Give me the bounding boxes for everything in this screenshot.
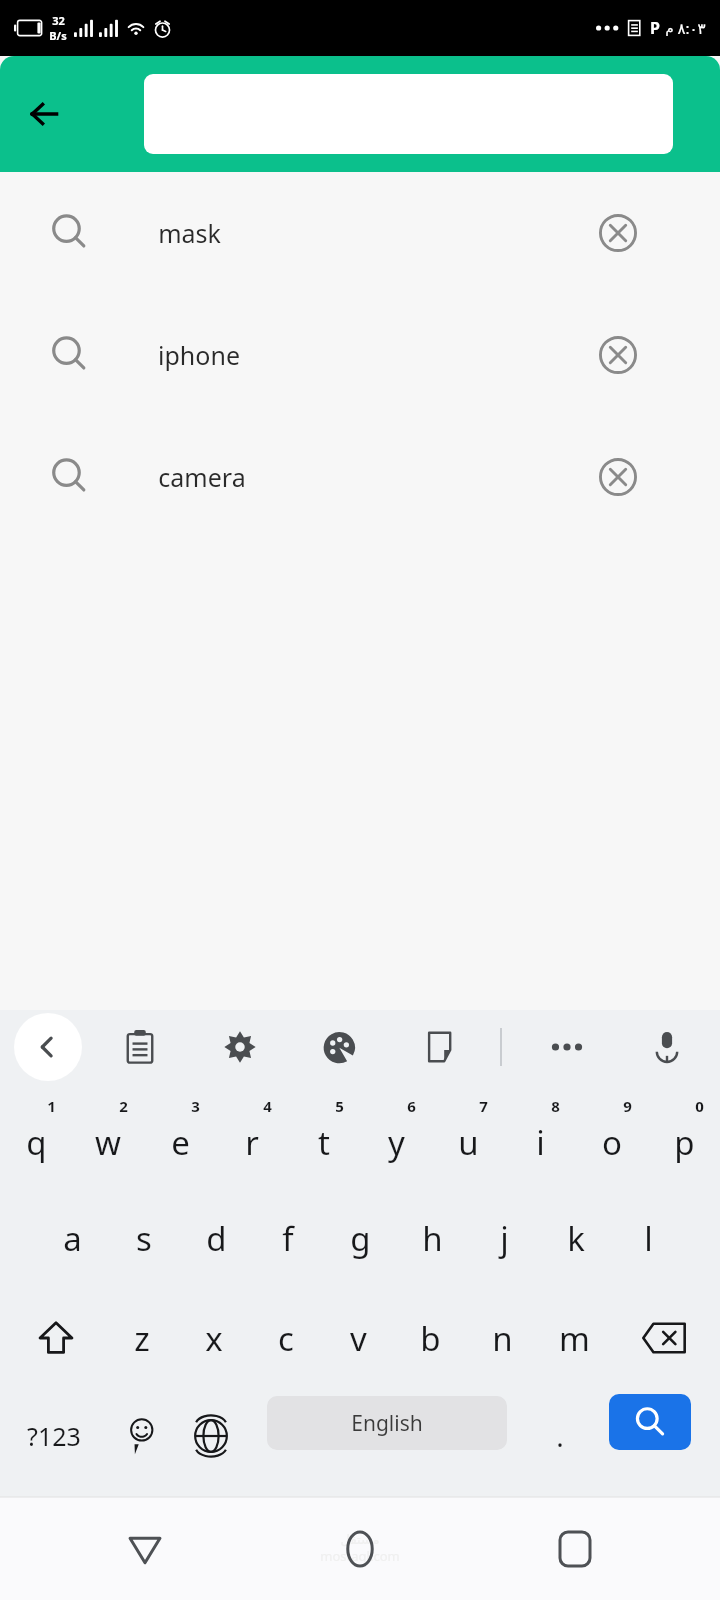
staticText: n (492, 1316, 513, 1361)
staticText: k (567, 1216, 585, 1261)
button[interactable]: z (106, 1288, 178, 1388)
button[interactable]: Stickers (406, 1013, 474, 1081)
staticText: u (458, 1120, 479, 1165)
button[interactable]: c (250, 1288, 322, 1388)
staticText: م (665, 21, 674, 36)
staticText: t (318, 1120, 330, 1165)
button[interactable]: Remove mask (596, 211, 640, 255)
button[interactable]: o (576, 1084, 648, 1188)
button[interactable]: camera (0, 416, 720, 538)
staticText: 4 (263, 1096, 272, 1116)
staticText: p (674, 1120, 695, 1165)
button[interactable]: Recent apps (540, 1514, 610, 1584)
button[interactable]: More options (533, 1013, 601, 1081)
staticText: P (650, 17, 660, 39)
button[interactable]: Remove iphone (596, 333, 640, 377)
button[interactable]: b (394, 1288, 466, 1388)
button[interactable]: m (538, 1288, 610, 1388)
button[interactable]: r (216, 1084, 288, 1188)
staticText: English (351, 1409, 423, 1438)
button[interactable]: w (72, 1084, 144, 1188)
staticText: 0 (695, 1096, 704, 1116)
button[interactable]: Search field (144, 74, 673, 154)
staticText: 2 (119, 1096, 128, 1116)
button[interactable]: Back (110, 1514, 180, 1584)
button[interactable]: Backspace (624, 1288, 704, 1388)
staticText: i (536, 1120, 545, 1165)
staticText: b (420, 1316, 441, 1361)
staticText: e (171, 1120, 190, 1165)
staticText: z (134, 1316, 150, 1361)
staticText: B/s (49, 28, 67, 43)
staticText: 8 (551, 1096, 560, 1116)
staticText: x (205, 1316, 223, 1361)
staticText: s (136, 1216, 152, 1261)
staticText: camera (158, 460, 246, 494)
staticText: 32 (52, 13, 65, 28)
button[interactable]: u (432, 1084, 504, 1188)
button[interactable]: h (396, 1188, 468, 1288)
staticText: . (556, 1417, 564, 1455)
button[interactable]: x (178, 1288, 250, 1388)
button[interactable]: y (360, 1084, 432, 1188)
button[interactable]: Home (325, 1514, 395, 1584)
button[interactable]: Themes (306, 1013, 374, 1081)
button[interactable]: j (468, 1188, 540, 1288)
button[interactable]: Voice input (633, 1013, 701, 1081)
button[interactable]: f (252, 1188, 324, 1288)
button[interactable]: ?123 (8, 1388, 100, 1484)
button[interactable]: t (288, 1084, 360, 1188)
button[interactable]: a (36, 1188, 108, 1288)
staticText: l (644, 1216, 653, 1261)
staticText: 7 (479, 1096, 488, 1116)
staticText: 3 (191, 1096, 200, 1116)
button[interactable]: Remove camera (596, 455, 640, 499)
button[interactable]: i (504, 1084, 576, 1188)
staticText: o (602, 1120, 622, 1165)
staticText: a (63, 1216, 82, 1261)
button[interactable]: g (324, 1188, 396, 1288)
button[interactable]: s (108, 1188, 180, 1288)
staticText: r (245, 1120, 259, 1165)
button[interactable]: Back (16, 86, 72, 142)
staticText: m (559, 1316, 590, 1361)
button[interactable]: Shift (16, 1288, 96, 1388)
staticText: f (282, 1216, 294, 1261)
button[interactable]: Clipboard (106, 1013, 174, 1081)
button[interactable]: iphone (0, 294, 720, 416)
button[interactable]: p (648, 1084, 720, 1188)
staticText: c (278, 1316, 294, 1361)
staticText: مستقل mostaql.com (320, 1532, 400, 1565)
button[interactable]: Collapse toolbar (14, 1013, 82, 1081)
button[interactable]: d (180, 1188, 252, 1288)
staticText: 9 (623, 1096, 632, 1116)
button[interactable]: Emoji and comma (108, 1388, 174, 1484)
staticText: g (350, 1216, 371, 1261)
staticText: ٨:٠٣ (677, 18, 706, 38)
staticText: ?123 (27, 1419, 81, 1453)
button[interactable]: English (267, 1396, 507, 1450)
button[interactable]: n (466, 1288, 538, 1388)
button[interactable]: Change language (178, 1388, 244, 1484)
staticText: q (26, 1120, 47, 1165)
staticText: iphone (158, 338, 240, 372)
staticText: 1 (47, 1096, 56, 1116)
button[interactable]: e (144, 1084, 216, 1188)
button[interactable]: k (540, 1188, 612, 1288)
button[interactable]: l (612, 1188, 684, 1288)
staticText: 6 (407, 1096, 416, 1116)
staticText: d (206, 1216, 227, 1261)
staticText: h (422, 1216, 443, 1261)
staticText: w (95, 1120, 121, 1165)
button[interactable]: q (0, 1084, 72, 1188)
button[interactable]: v (322, 1288, 394, 1388)
staticText: y (388, 1120, 405, 1165)
staticText: j (500, 1216, 509, 1261)
button[interactable]: mask (0, 172, 720, 294)
button[interactable]: Settings (206, 1013, 274, 1081)
staticText: v (350, 1316, 367, 1361)
button[interactable]: . (527, 1388, 593, 1484)
button[interactable]: Search (609, 1394, 691, 1450)
staticText: 5 (335, 1096, 344, 1116)
staticText: mask (158, 216, 221, 250)
